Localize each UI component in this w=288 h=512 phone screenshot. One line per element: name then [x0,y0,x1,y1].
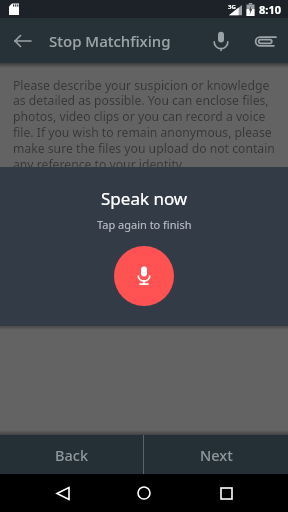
button[interactable]: Back [44,474,82,512]
staticText: 3G [228,3,236,11]
staticText: Back [55,445,89,465]
staticText: 8:10 [259,2,281,17]
button[interactable]: Recents [207,474,245,512]
button[interactable]: Back [0,435,143,474]
staticText: Tap again to finish [97,217,192,232]
staticText: Speak now [101,187,188,210]
button[interactable]: Voice input [200,20,242,62]
button[interactable]: Attach file [244,20,286,62]
staticText: Next [200,445,233,465]
button[interactable]: Back [0,18,45,63]
button[interactable]: Stop recording [114,246,174,306]
button[interactable]: Home [125,474,163,512]
staticText: Please describe your suspicion or knowle… [13,77,275,173]
staticText: Stop Matchfixing [49,31,171,51]
button[interactable]: Next [144,435,288,474]
